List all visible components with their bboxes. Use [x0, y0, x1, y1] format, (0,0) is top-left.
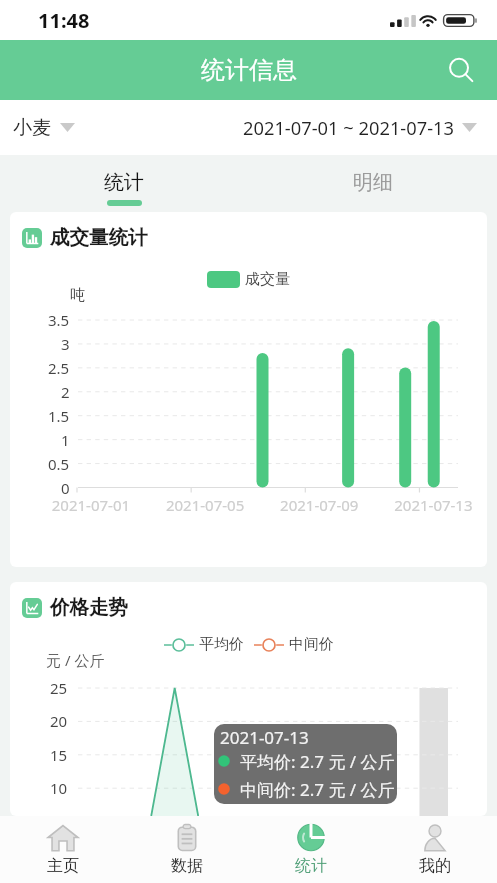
staticText: 平均价	[199, 635, 244, 654]
staticText: 成交量统计	[50, 225, 148, 250]
button[interactable]: 2021-07-01 ~ 2021-07-13	[243, 100, 497, 155]
button[interactable]: Search	[437, 46, 485, 94]
staticText: 数据	[171, 856, 203, 876]
staticText: 中间价	[289, 635, 334, 654]
staticText: 统计信息	[201, 55, 297, 85]
button[interactable]: 小麦	[0, 100, 75, 155]
button[interactable]: 我的	[373, 816, 497, 883]
staticText: 2021-07-01 ~ 2021-07-13	[243, 115, 455, 140]
button[interactable]: 数据	[125, 816, 249, 883]
staticText: 吨	[70, 286, 85, 305]
button[interactable]: 主页	[0, 816, 125, 883]
button[interactable]: 明细	[248, 155, 497, 210]
staticText: 价格走势	[50, 595, 128, 620]
staticText: 元 / 公斤	[46, 650, 105, 670]
staticText: 主页	[47, 856, 79, 876]
staticText: 统计	[104, 170, 144, 195]
staticText: 明细	[353, 170, 393, 195]
staticText: 我的	[419, 856, 451, 876]
staticText: 成交量	[245, 270, 290, 289]
staticText: 小麦	[13, 116, 51, 140]
button[interactable]: 统计	[0, 155, 248, 210]
staticText: 统计	[295, 856, 327, 876]
staticText: 11:48	[38, 7, 90, 34]
button[interactable]: 统计	[249, 816, 373, 883]
